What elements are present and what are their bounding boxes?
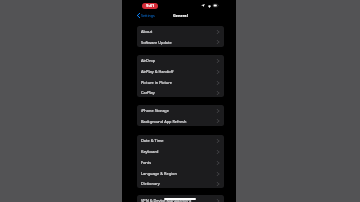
staticText: CarPlay — [141, 90, 155, 95]
button[interactable]: Dictionary — [137, 179, 224, 188]
staticText: General — [173, 13, 188, 18]
button[interactable]: Screen recording in progress — [142, 3, 158, 9]
staticText: AirDrop — [141, 58, 156, 63]
other: Location services active — [201, 4, 205, 7]
staticText: Picture in Picture — [141, 80, 172, 85]
staticText: Fonts — [141, 160, 152, 165]
staticText: Keyboard — [141, 149, 159, 154]
button[interactable]: About — [137, 26, 224, 37]
staticText: iPhone Storage — [141, 108, 169, 113]
staticText: AirPlay & Handoff — [141, 69, 174, 74]
button[interactable]: AirDrop — [137, 55, 224, 66]
other: Battery — [213, 4, 219, 7]
button[interactable]: Software Update — [137, 37, 224, 47]
button[interactable]: VPN & Device Management — [137, 195, 224, 202]
staticText: Language & Region — [141, 171, 177, 176]
staticText: Settings — [141, 13, 155, 18]
button[interactable]: Settings — [136, 12, 156, 19]
staticText: 9:41 — [146, 3, 155, 9]
button[interactable]: Fonts — [137, 157, 224, 168]
staticText: Software Update — [141, 40, 172, 45]
button[interactable]: Background App Refresh — [137, 116, 224, 126]
button[interactable]: CarPlay — [137, 88, 224, 97]
staticText: About — [141, 29, 153, 34]
button[interactable]: Date & Time — [137, 135, 224, 146]
staticText: Background App Refresh — [141, 119, 187, 124]
button[interactable]: AirPlay & Handoff — [137, 66, 224, 77]
staticText: Dictionary — [141, 181, 160, 186]
staticText: VPN & Device Management — [141, 198, 192, 202]
button[interactable]: Picture in Picture — [137, 77, 224, 88]
staticText: Date & Time — [141, 138, 164, 143]
button[interactable]: Language & Region — [137, 168, 224, 179]
button[interactable]: Keyboard — [137, 146, 224, 157]
button[interactable]: iPhone Storage — [137, 105, 224, 116]
other: Wi-Fi — [208, 5, 211, 8]
